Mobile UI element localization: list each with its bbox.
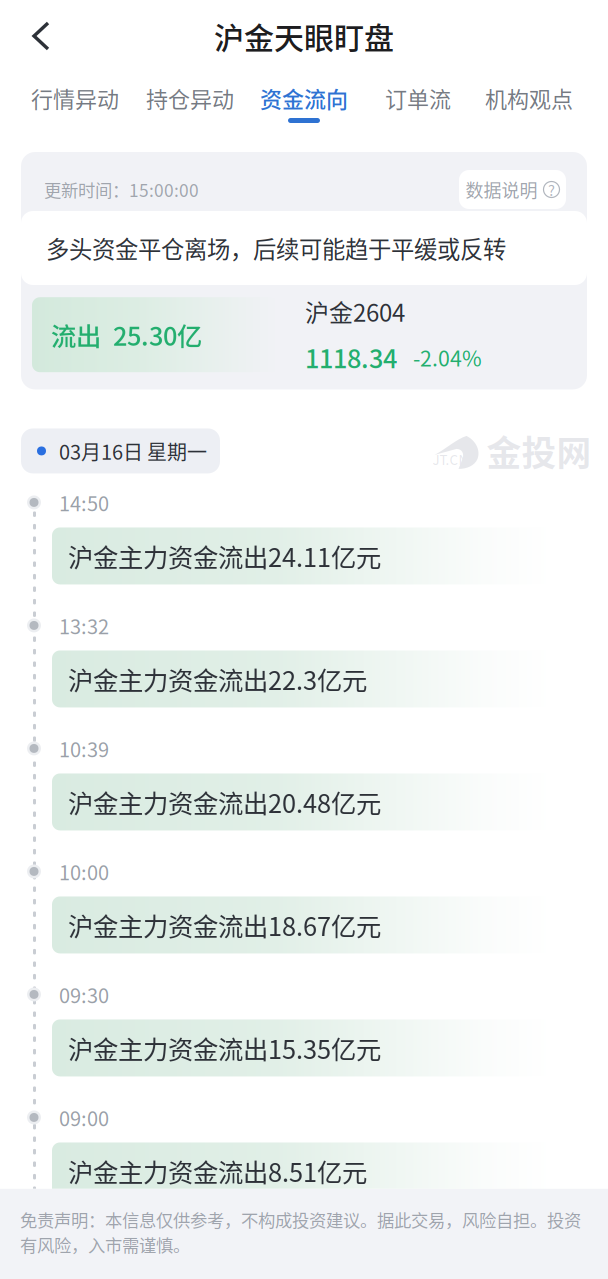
- button[interactable]: 数据说明: [459, 170, 566, 209]
- staticText: 更新时间：15:00:00: [44, 177, 199, 202]
- staticText: 10:00: [59, 857, 109, 886]
- staticText: JT.CN: [432, 450, 468, 469]
- staticText: 14:50: [59, 488, 109, 517]
- button[interactable]: 持仓异动: [146, 72, 259, 123]
- staticText: 沪金天眼盯盘: [214, 14, 394, 58]
- staticText: ?: [548, 179, 555, 200]
- staticText: 沪金2604: [305, 294, 405, 329]
- staticText: 10:39: [59, 734, 109, 763]
- button[interactable]: 机构观点: [485, 72, 605, 123]
- button[interactable]: 行情异动: [31, 72, 146, 123]
- staticText: 金投网: [486, 426, 591, 476]
- staticText: -2.04%: [413, 342, 482, 372]
- staticText: 持仓异动: [146, 82, 234, 114]
- staticText: 订单流: [385, 82, 451, 114]
- staticText: 资金流向: [260, 82, 348, 114]
- button[interactable]: 订单流: [385, 72, 485, 123]
- staticText: 沪金主力资金流出22.3亿元: [68, 661, 367, 697]
- staticText: 沪金主力资金流出24.11亿元: [68, 538, 381, 574]
- button[interactable]: 返回: [18, 12, 66, 60]
- staticText: 数据说明: [465, 176, 537, 203]
- staticText: 13:32: [59, 611, 109, 640]
- staticText: 多头资金平仓离场，后续可能趋于平缓或反转: [46, 231, 506, 265]
- staticText: 09:30: [59, 980, 109, 1009]
- staticText: 免责声明：本信息仅供参考，不构成投资建议。据此交易，风险自担。投资有风险，入市需…: [20, 1207, 581, 1257]
- staticText: 沪金主力资金流出15.35亿元: [68, 1030, 381, 1066]
- staticText: 行情异动: [31, 82, 119, 114]
- staticText: 沪金主力资金流出18.67亿元: [68, 907, 381, 943]
- staticText: 机构观点: [485, 82, 573, 114]
- staticText: 沪金主力资金流出20.48亿元: [68, 784, 381, 820]
- staticText: 1118.34: [305, 339, 397, 375]
- staticText: 09:00: [59, 1103, 109, 1132]
- button[interactable]: 资金流向: [259, 72, 385, 123]
- staticText: 03月16日 星期一: [59, 436, 207, 465]
- staticText: 沪金主力资金流出8.51亿元: [68, 1153, 367, 1189]
- staticText: 流出 25.30亿: [51, 316, 202, 353]
